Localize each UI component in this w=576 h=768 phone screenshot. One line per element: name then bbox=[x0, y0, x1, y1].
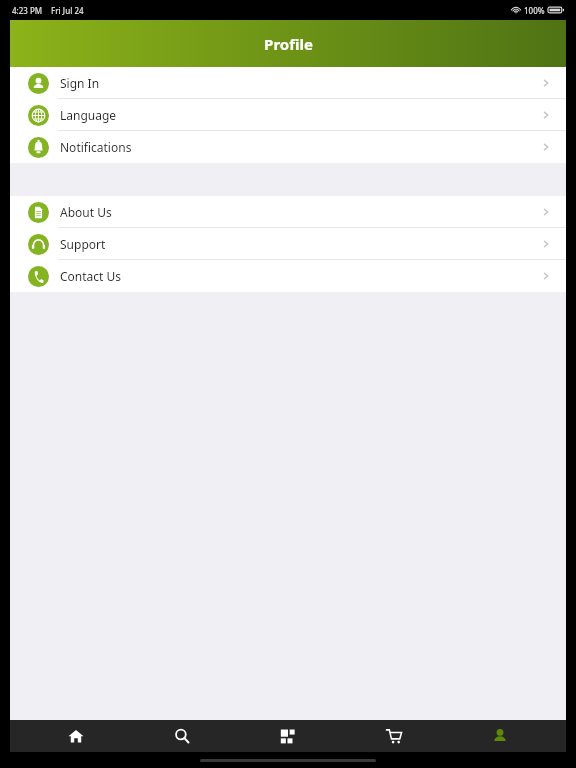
staticText: Support bbox=[60, 236, 106, 252]
button[interactable]: Categories bbox=[248, 720, 328, 752]
button[interactable]: Sign In bbox=[10, 67, 566, 99]
staticText: Sign In bbox=[60, 75, 100, 91]
button[interactable]: About Us bbox=[10, 196, 566, 228]
button[interactable]: Search bbox=[142, 720, 222, 752]
staticText: Profile bbox=[264, 34, 313, 54]
button[interactable]: Cart bbox=[354, 720, 434, 752]
button[interactable]: Home bbox=[36, 720, 116, 752]
staticText: Fri Jul 24 bbox=[51, 5, 84, 16]
button[interactable]: Support bbox=[10, 228, 566, 260]
staticText: Language bbox=[60, 107, 117, 123]
button[interactable]: Notifications bbox=[10, 131, 566, 163]
staticText: 4:23 PM bbox=[12, 5, 43, 16]
staticText: Notifications bbox=[60, 139, 132, 155]
button[interactable]: Language bbox=[10, 99, 566, 131]
button[interactable]: Profile bbox=[460, 720, 540, 752]
button[interactable]: Contact Us bbox=[10, 260, 566, 292]
staticText: 100% bbox=[524, 5, 545, 16]
staticText: About Us bbox=[60, 204, 112, 220]
staticText: Contact Us bbox=[60, 268, 122, 284]
